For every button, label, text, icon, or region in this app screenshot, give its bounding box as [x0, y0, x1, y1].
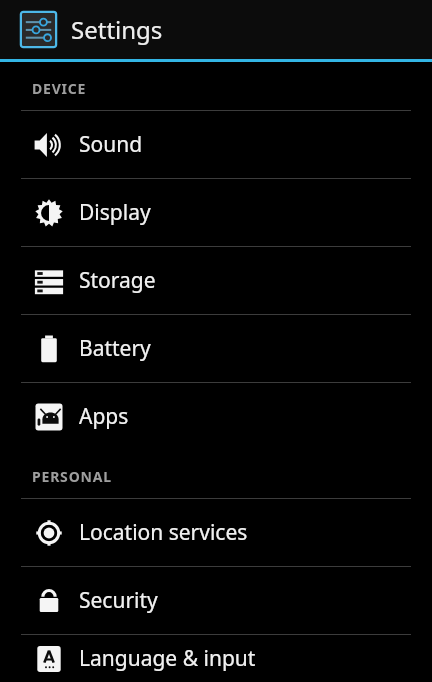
staticText: Settings: [71, 13, 163, 46]
button[interactable]: Storage: [0, 247, 432, 314]
staticText: Language & input: [79, 644, 256, 673]
button[interactable]: Security: [0, 567, 432, 634]
button[interactable]: Battery: [0, 315, 432, 382]
button[interactable]: Language & input: [0, 635, 432, 682]
other: Settings: [18, 9, 59, 50]
staticText: Apps: [79, 402, 129, 431]
button[interactable]: Sound: [0, 111, 432, 178]
button[interactable]: Location services: [0, 499, 432, 566]
staticText: Location services: [79, 518, 248, 547]
staticText: Battery: [79, 334, 151, 363]
staticText: Sound: [79, 130, 143, 159]
staticText: DEVICE: [32, 79, 87, 98]
staticText: PERSONAL: [32, 467, 112, 486]
staticText: Storage: [79, 266, 156, 295]
button[interactable]: Display: [0, 179, 432, 246]
button[interactable]: Apps: [0, 383, 432, 450]
staticText: Display: [79, 198, 151, 227]
button[interactable]: Settings: [0, 0, 432, 59]
staticText: Security: [79, 586, 158, 615]
